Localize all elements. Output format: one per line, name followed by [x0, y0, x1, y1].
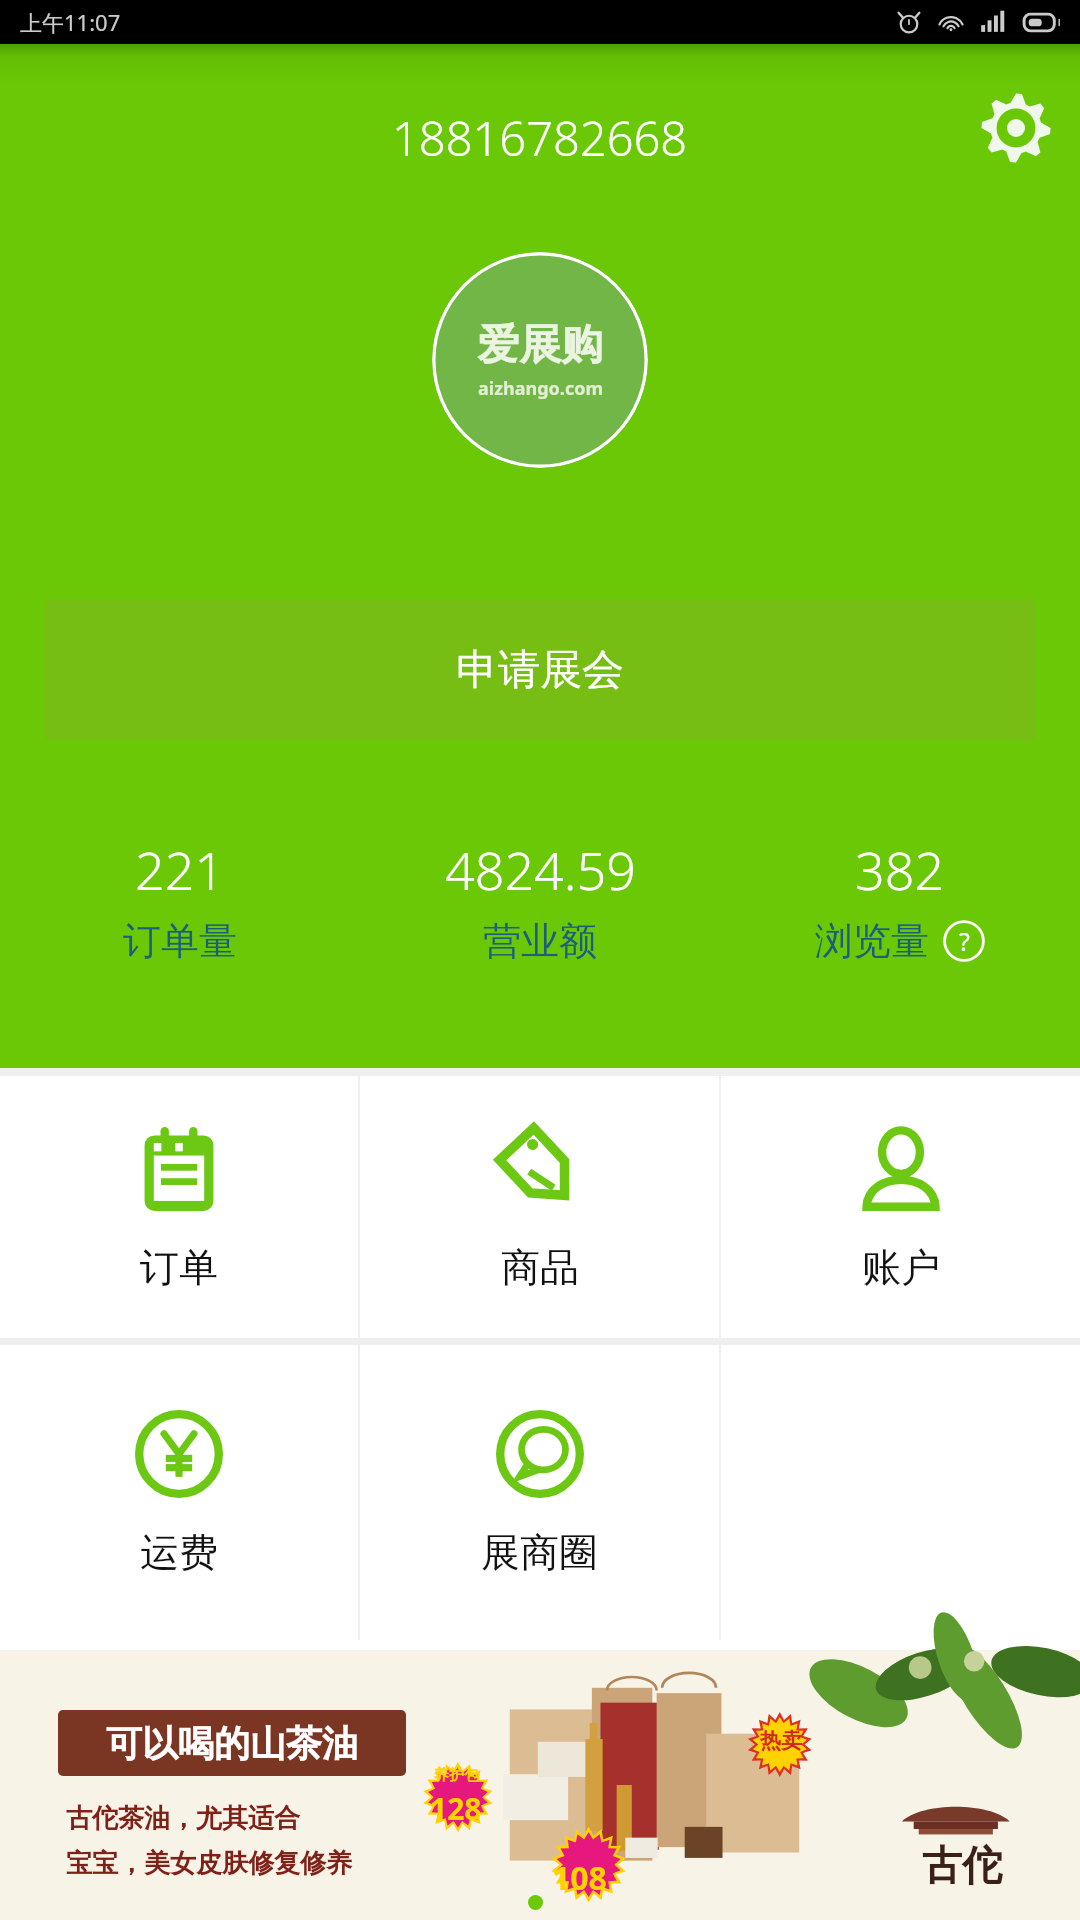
staticText: 古佗	[922, 1840, 1002, 1890]
staticText: 浏览量	[815, 917, 929, 965]
staticText: 商品	[501, 1243, 579, 1292]
staticText: 申请展会	[456, 644, 624, 697]
staticText: 订单	[140, 1243, 218, 1292]
staticText: 爱展购	[477, 319, 603, 372]
button[interactable]: 展商圈	[360, 1345, 719, 1640]
staticText: 18816782668	[392, 106, 688, 170]
button[interactable]: 221	[0, 834, 360, 965]
button[interactable]: 382	[720, 834, 1080, 965]
button[interactable]: 账户	[721, 1076, 1080, 1338]
staticText: 营业额	[483, 917, 597, 965]
staticText: aizhango.com	[478, 376, 603, 401]
button[interactable]: Profile avatar	[432, 252, 648, 468]
staticText: 4824.59	[445, 834, 636, 905]
button[interactable]: 运费	[0, 1345, 358, 1640]
staticText: 382	[855, 834, 945, 905]
button[interactable]: 申请展会	[45, 600, 1035, 740]
staticText: 古佗茶油，尤其适合	[66, 1802, 300, 1835]
staticText: 上午11:07	[20, 7, 121, 37]
button[interactable]: 可以喝的山茶油	[0, 1650, 1080, 1920]
staticText: 可以喝的山茶油	[106, 1721, 358, 1766]
staticText: 221	[135, 834, 225, 905]
staticText: 展商圈	[481, 1528, 598, 1577]
button[interactable]: 订单	[0, 1076, 358, 1338]
staticText: 运费	[140, 1528, 218, 1577]
staticText: 热卖	[760, 1728, 802, 1754]
staticText: 宝宝，美女皮肤修复修养	[66, 1847, 352, 1880]
staticText: 养护包	[434, 1766, 479, 1785]
staticText: 账户	[862, 1243, 940, 1292]
staticText: ?	[959, 924, 970, 958]
button[interactable]: 4824.59	[360, 834, 720, 965]
button[interactable]: 商品	[360, 1076, 719, 1338]
staticText: 108	[552, 1856, 607, 1900]
staticText: 128	[430, 1788, 482, 1829]
staticText: 订单量	[123, 917, 237, 965]
button[interactable]: Settings	[972, 84, 1060, 172]
